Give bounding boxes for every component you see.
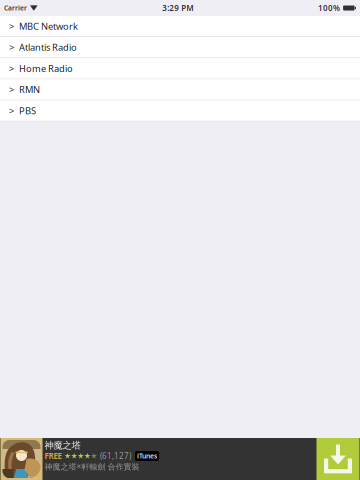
button[interactable]: > (0, 79, 360, 100)
staticText: MBC Network (19, 20, 78, 32)
button[interactable]: > (0, 16, 360, 37)
staticText: 神魔之塔 (44, 440, 80, 451)
button[interactable]: > (0, 58, 360, 79)
staticText: 100% (318, 3, 340, 13)
staticText: 神魔之塔×軒轅劍 合作實裝 (44, 461, 139, 472)
staticText: > (9, 41, 14, 53)
staticText: > (9, 104, 14, 117)
staticText: RMN (19, 83, 40, 96)
staticText: PBS (19, 104, 36, 117)
staticText: Home Radio (19, 62, 73, 75)
staticText: > (9, 83, 14, 96)
staticText: 3:29 PM (162, 3, 193, 13)
staticText: Atlantis Radio (19, 41, 77, 53)
staticText: > (9, 20, 14, 32)
staticText: iTunes (137, 452, 157, 460)
button[interactable]: > (0, 100, 360, 121)
staticText: (61,127) (100, 451, 131, 461)
staticText: FREE (44, 451, 61, 461)
button[interactable]: Advertisement (0, 438, 360, 480)
staticText: > (9, 62, 14, 75)
button[interactable]: > (0, 37, 360, 58)
staticText: Carrier (4, 4, 27, 12)
